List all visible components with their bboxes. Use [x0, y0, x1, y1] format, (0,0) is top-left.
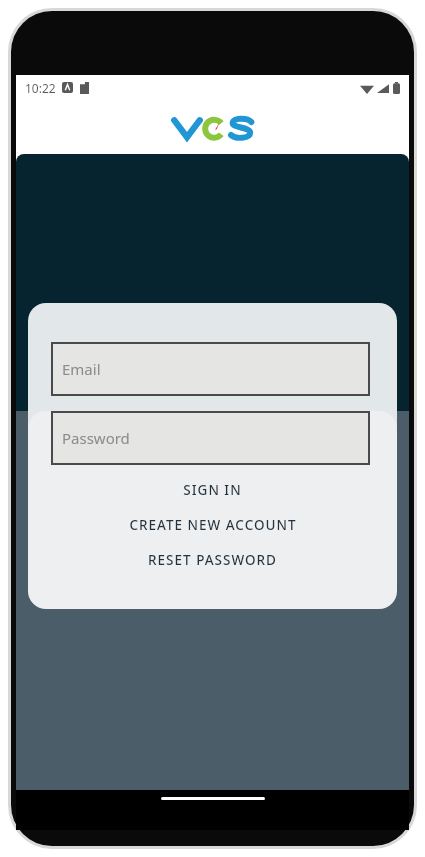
staticText: 10:22 [25, 80, 56, 96]
other: VCS logo [173, 110, 253, 144]
staticText: CREATE NEW ACCOUNT [129, 516, 297, 534]
button[interactable]: Password [51, 411, 370, 465]
button[interactable]: RESET PASSWORD [16, 542, 409, 577]
staticText: SIGN IN [183, 481, 242, 499]
button[interactable]: CREATE NEW ACCOUNT [16, 507, 409, 542]
staticText: RESET PASSWORD [148, 551, 277, 569]
staticText: Password [62, 428, 130, 448]
staticText: Email [62, 359, 101, 379]
button[interactable]: Email [51, 342, 370, 396]
button[interactable]: SIGN IN [16, 472, 409, 507]
